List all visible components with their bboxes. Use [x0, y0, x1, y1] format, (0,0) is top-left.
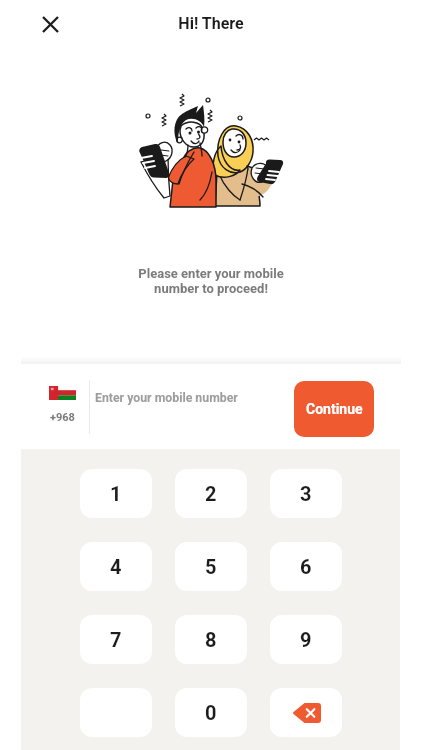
staticText: +968: [50, 411, 75, 424]
staticText: Please enter your mobile number to proce…: [0, 266, 422, 296]
staticText: 0: [205, 701, 217, 724]
button[interactable]: 3: [270, 469, 342, 518]
button[interactable]: 7: [80, 615, 152, 664]
staticText: 5: [205, 555, 217, 578]
staticText: Hi! There: [0, 14, 422, 33]
staticText: 8: [205, 628, 217, 651]
button[interactable]: 2: [175, 469, 247, 518]
button[interactable]: Continue: [294, 381, 374, 437]
staticText: 2: [205, 482, 217, 505]
staticText: 7: [110, 628, 122, 651]
button[interactable]: 6: [270, 542, 342, 591]
staticText: 6: [300, 555, 312, 578]
button[interactable]: Delete: [270, 688, 342, 737]
button[interactable]: 1: [80, 469, 152, 518]
staticText: 1: [110, 482, 122, 505]
button[interactable]: Close: [30, 4, 70, 44]
staticText: 4: [110, 555, 122, 578]
button[interactable]: 9: [270, 615, 342, 664]
button[interactable]: 0: [175, 688, 247, 737]
staticText: Continue: [306, 401, 363, 417]
staticText: 3: [300, 482, 312, 505]
staticText: 9: [300, 628, 312, 651]
button[interactable]: 5: [175, 542, 247, 591]
button[interactable]: +968: [36, 386, 88, 424]
button[interactable]: 4: [80, 542, 152, 591]
staticText: Enter your mobile number: [95, 391, 238, 405]
button[interactable]: 8: [175, 615, 247, 664]
